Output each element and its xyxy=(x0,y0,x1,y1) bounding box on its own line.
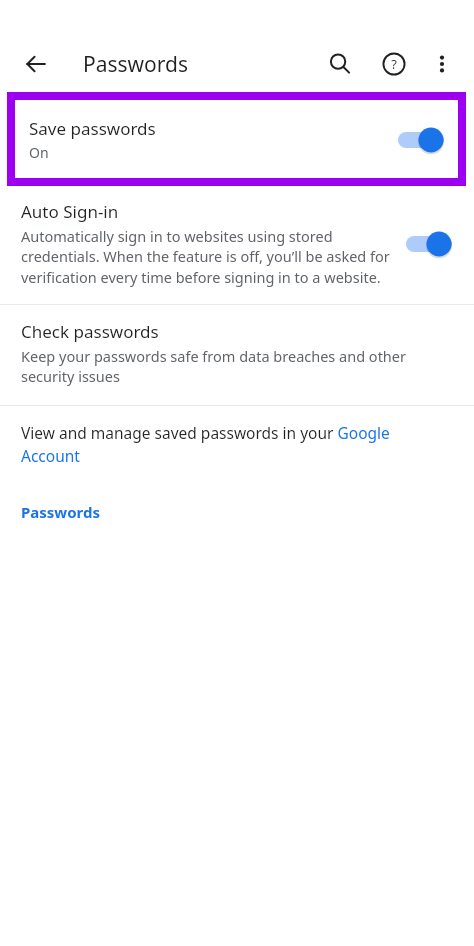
staticText: Auto Sign-in xyxy=(21,200,119,223)
button[interactable]: Passwords xyxy=(0,500,121,528)
staticText: View and manage saved passwords in your … xyxy=(21,422,442,467)
staticText: Automatically sign in to websites using … xyxy=(21,226,396,288)
button[interactable]: Check passwords xyxy=(0,305,474,405)
button[interactable]: Save passwords xyxy=(15,100,458,178)
staticText: Passwords xyxy=(21,502,100,522)
staticText: Save passwords xyxy=(29,117,156,140)
staticText: On xyxy=(29,143,49,162)
button[interactable]: Auto Sign-in xyxy=(0,186,474,304)
button[interactable]: More options xyxy=(420,42,464,86)
staticText: Passwords xyxy=(83,50,189,79)
staticText: Keep your passwords safe from data breac… xyxy=(21,346,444,387)
staticText: Check passwords xyxy=(21,320,159,343)
button[interactable]: Help xyxy=(372,42,416,86)
staticText: ? xyxy=(391,55,397,73)
button[interactable]: View and manage saved passwords in your … xyxy=(0,406,474,471)
button[interactable]: Search xyxy=(318,42,362,86)
button[interactable]: Back xyxy=(12,40,60,88)
